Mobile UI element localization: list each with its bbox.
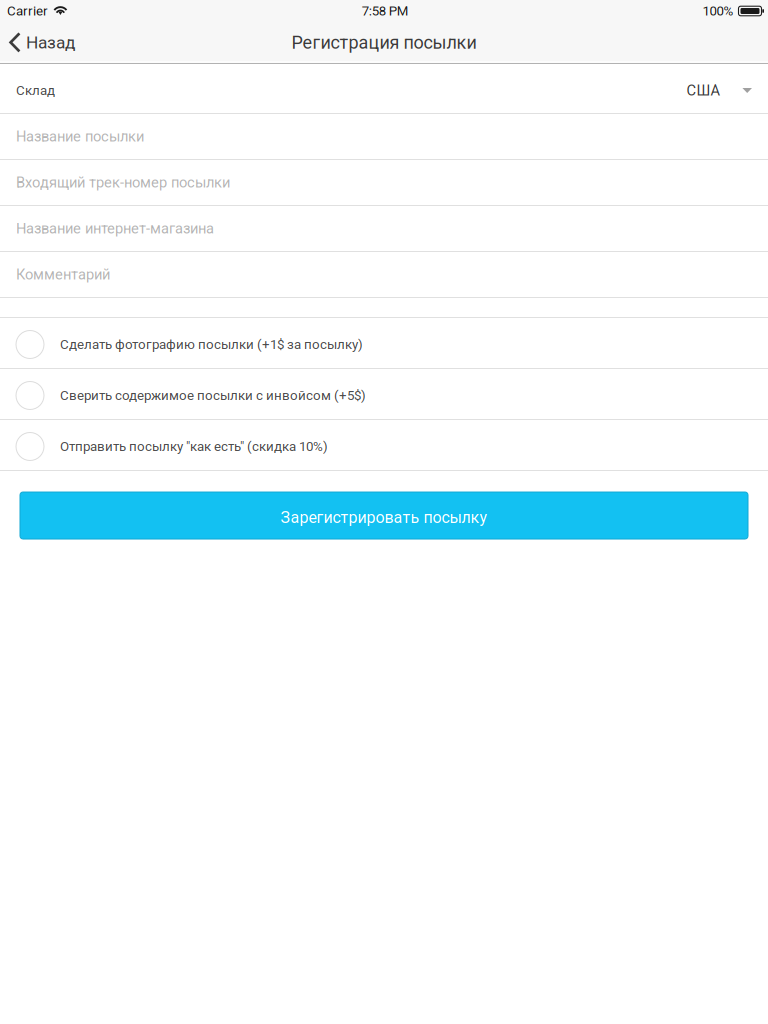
button[interactable]: Назад <box>0 24 83 59</box>
button[interactable]: Название посылки <box>0 114 768 160</box>
staticText: Carrier <box>7 3 48 19</box>
button[interactable]: Комментарий <box>0 252 768 298</box>
staticText: Сверить содержимое посылки с инвойсом (+… <box>60 388 366 403</box>
button[interactable]: Входящий трек-номер посылки <box>0 160 768 206</box>
button[interactable]: Сверить содержимое посылки с инвойсом (+… <box>0 369 768 420</box>
staticText: Регистрация посылки <box>291 32 476 53</box>
button[interactable]: Название интернет-магазина <box>0 206 768 252</box>
staticText: Отправить посылку "как есть" (скидка 10%… <box>60 439 328 454</box>
button[interactable]: Сделать фотографию посылки (+1$ за посыл… <box>0 318 768 369</box>
staticText: Название интернет-магазина <box>16 220 214 237</box>
staticText: Входящий трек-номер посылки <box>16 174 230 191</box>
staticText: США <box>686 82 720 99</box>
staticText: 100% <box>702 3 733 19</box>
staticText: Зарегистрировать посылку <box>280 508 487 527</box>
staticText: Назад <box>26 32 75 53</box>
button[interactable]: Зарегистрировать посылку <box>20 492 748 539</box>
button[interactable]: Отправить посылку "как есть" (скидка 10%… <box>0 420 768 471</box>
staticText: Комментарий <box>16 266 110 283</box>
staticText: Сделать фотографию посылки (+1$ за посыл… <box>60 337 363 352</box>
staticText: Название посылки <box>16 128 144 145</box>
staticText: 7:58 PM <box>362 3 409 19</box>
staticText: Склад <box>16 83 55 98</box>
button[interactable]: Склад <box>0 64 768 114</box>
